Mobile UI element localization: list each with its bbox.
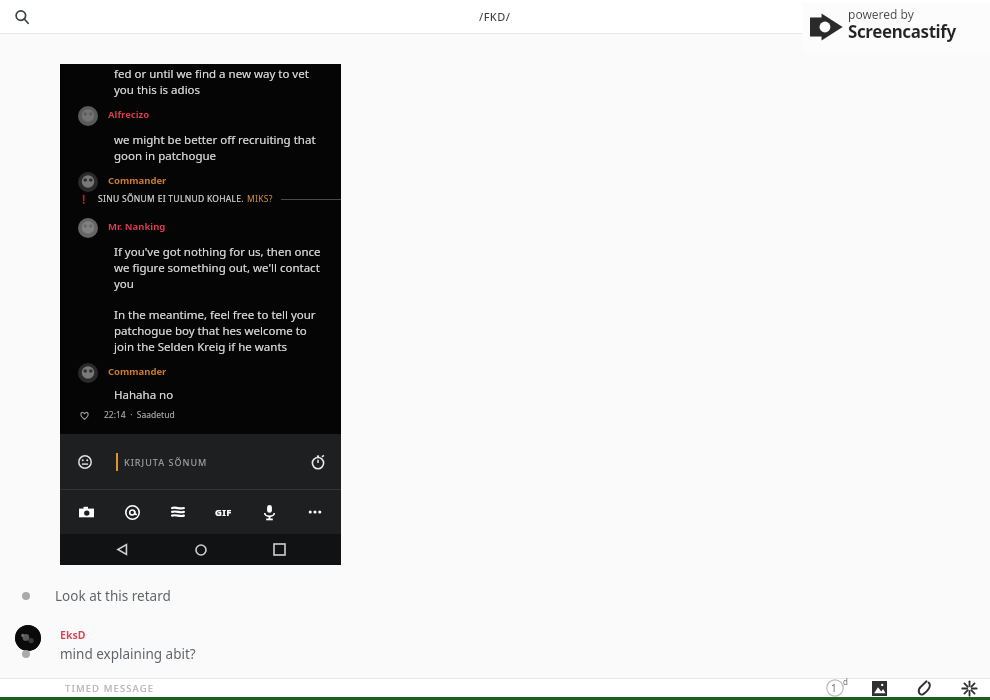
staticText: TIMED MESSAGE (65, 682, 155, 695)
staticText: we might be better off recruiting that (114, 132, 316, 148)
staticText: you (114, 276, 134, 292)
staticText: Alfrecizo (108, 108, 150, 121)
staticText: join the Selden Kreig if he wants (114, 339, 288, 355)
staticText: powered by (848, 6, 914, 22)
button[interactable]: Home (184, 534, 218, 565)
button[interactable]: GIF (203, 492, 243, 532)
staticText: Screencastify (848, 20, 956, 43)
button[interactable]: Look at this retard (0, 583, 990, 609)
staticText: KIRJUTA SÕNUM (124, 456, 208, 468)
staticText: 1 (831, 681, 837, 695)
button[interactable]: Stickers (158, 492, 198, 532)
staticText: d (843, 676, 848, 687)
staticText: If you've got nothing for us, then once (114, 244, 321, 260)
button[interactable]: Search (8, 3, 36, 31)
staticText: Mr. Nanking (108, 220, 166, 233)
staticText: In the meantime, feel free to tell your (114, 307, 316, 323)
button[interactable]: Call (936, 4, 962, 30)
staticText: Hahaha no (114, 387, 174, 403)
staticText: you this is adios (114, 82, 201, 98)
staticText: GIF (215, 506, 232, 519)
staticText: Look at this retard (55, 587, 171, 605)
button[interactable]: More (295, 492, 335, 532)
button[interactable]: Message timer 1 day (818, 679, 852, 697)
staticText: Commander (108, 174, 167, 187)
staticText: EksD (60, 628, 86, 642)
staticText: Commander (108, 365, 167, 378)
button[interactable]: Camera (66, 492, 106, 532)
button[interactable]: Effects (954, 679, 984, 697)
staticText: SINU SÕNUM EI TULNUD KOHALE. (98, 193, 244, 205)
staticText: patchogue boy that hes welcome to (114, 323, 307, 339)
staticText: mind explaining abit? (60, 645, 196, 663)
button[interactable]: Add image (864, 679, 894, 697)
staticText: 22:14 · Saadetud (104, 409, 175, 421)
button[interactable]: Image attachment (60, 64, 341, 565)
button[interactable]: Emoji (74, 451, 96, 473)
button[interactable]: Attach file (910, 679, 940, 697)
staticText: MIKS? (247, 193, 273, 205)
staticText: /FKD/ (479, 9, 511, 24)
button[interactable]: Mention (112, 492, 152, 532)
button[interactable]: Timer (307, 451, 329, 473)
button[interactable]: Voice message (249, 492, 289, 532)
button[interactable]: Back (105, 534, 139, 565)
staticText: we figure something out, we'll contact (114, 260, 320, 276)
staticText: goon in patchogue (114, 148, 217, 164)
button[interactable]: EksD (0, 622, 990, 672)
staticText: ! (82, 191, 86, 207)
staticText: fed or until we find a new way to vet (114, 66, 309, 82)
button[interactable]: Recents (262, 534, 296, 565)
